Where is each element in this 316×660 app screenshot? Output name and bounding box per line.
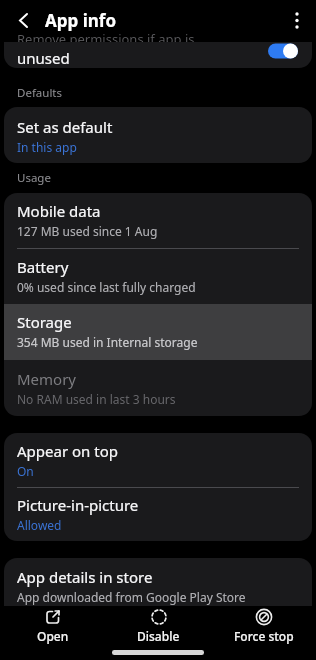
staticText: 0% used since last fully charged	[17, 279, 196, 295]
staticText: Mobile data	[17, 201, 101, 221]
button[interactable]: Set as default	[4, 107, 312, 163]
staticText: Picture-in-picture	[17, 495, 139, 515]
staticText: Set as default	[17, 117, 113, 137]
staticText: Allowed	[17, 517, 62, 533]
staticText: Appear on top	[17, 441, 118, 461]
button[interactable]: Disable	[106, 606, 211, 660]
button[interactable]: App details in store	[4, 558, 312, 606]
staticText: 354 MB used in Internal storage	[17, 334, 198, 350]
staticText: Battery	[17, 257, 69, 277]
staticText: Open	[37, 628, 69, 644]
staticText: In this app	[17, 139, 77, 155]
button[interactable]: Mobile data	[4, 193, 312, 249]
staticText: 127 MB used since 1 Aug	[17, 223, 158, 239]
button[interactable]: Battery	[4, 249, 312, 304]
button[interactable]: unused	[4, 42, 312, 68]
staticText: Storage	[17, 312, 72, 332]
staticText: No RAM used in last 3 hours	[17, 391, 176, 407]
staticText: Memory	[17, 369, 77, 389]
button[interactable]: Force stop	[211, 606, 316, 660]
staticText: unused	[17, 48, 70, 68]
staticText: Force stop	[234, 628, 294, 644]
staticText: App downloaded from Google Play Store	[17, 589, 246, 605]
button[interactable]	[8, 6, 38, 34]
button[interactable]: Picture-in-picture	[4, 487, 312, 541]
button[interactable]: Open	[0, 606, 106, 660]
button[interactable]: Memory	[4, 360, 312, 416]
staticText: Disable	[137, 628, 180, 644]
staticText: On	[17, 463, 34, 479]
staticText: Usage	[17, 170, 51, 186]
staticText: App details in store	[17, 567, 153, 587]
staticText: App info	[45, 9, 117, 32]
button[interactable]	[284, 4, 312, 34]
staticText: Remove permissions if app is	[17, 30, 195, 48]
button[interactable]: Appear on top	[4, 433, 312, 487]
button[interactable]: Storage	[4, 304, 312, 360]
staticText: Defaults	[17, 85, 63, 101]
